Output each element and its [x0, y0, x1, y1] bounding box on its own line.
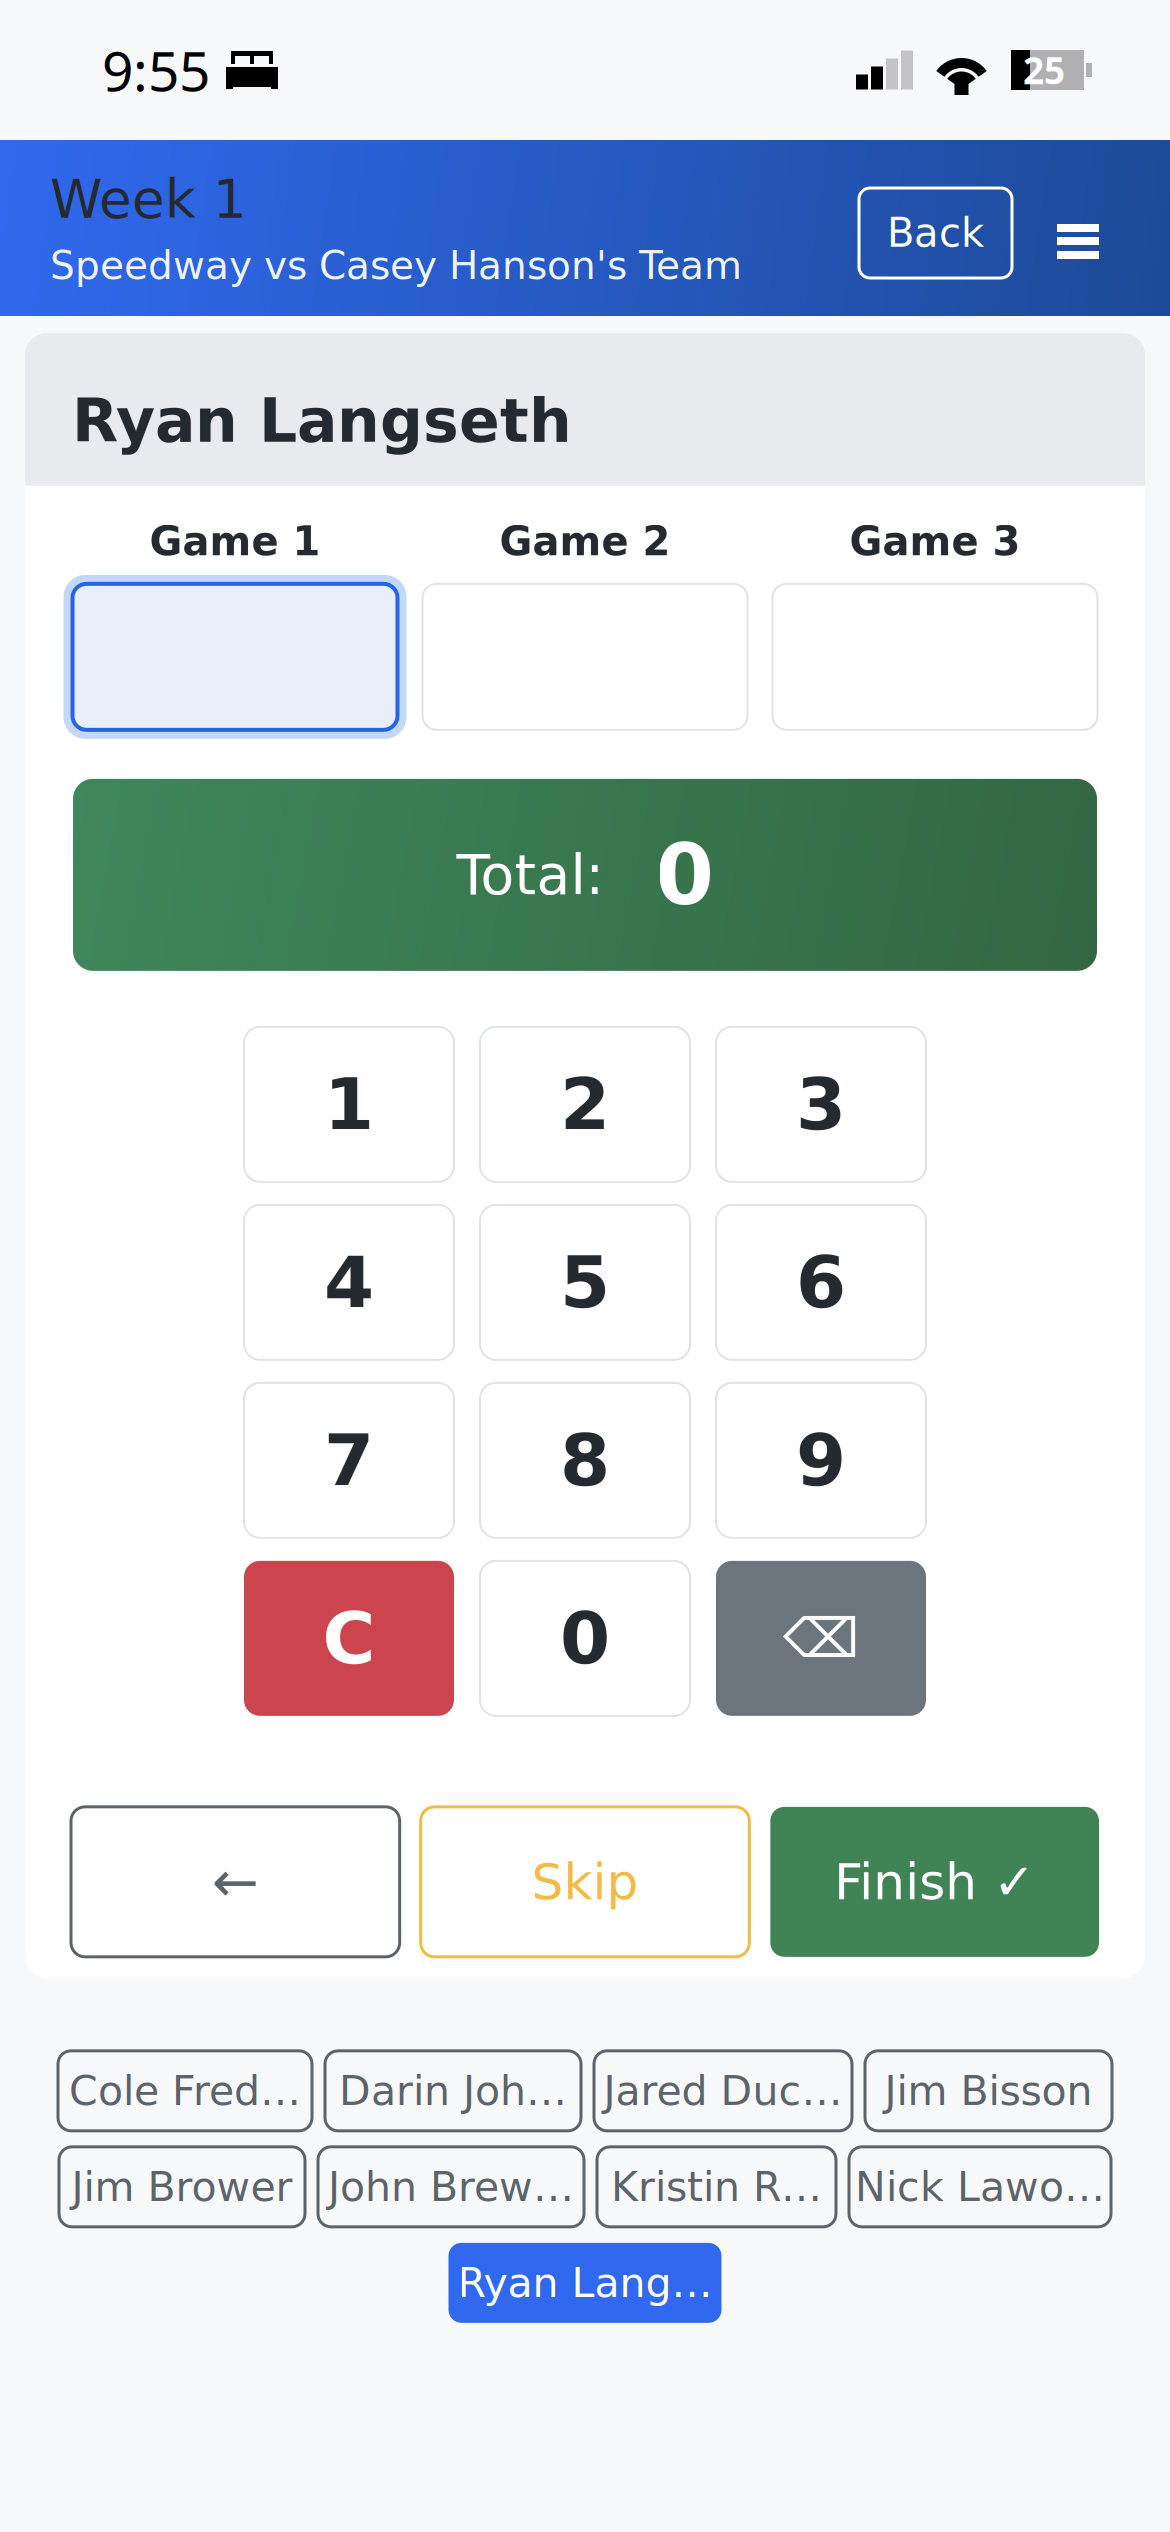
staticText: Jared Duc… — [603, 2067, 842, 2115]
staticText: Total: — [456, 843, 604, 907]
staticText: Back — [887, 210, 984, 256]
staticText: ⌫ — [783, 1607, 859, 1670]
staticText: Week 1 — [50, 169, 247, 230]
button[interactable] — [772, 575, 1097, 739]
staticText: Finish ✓ — [834, 1853, 1035, 1911]
staticText: Darin Joh… — [339, 2067, 567, 2115]
staticText: 9:55 — [102, 32, 210, 107]
button[interactable]: Menu — [1043, 178, 1113, 278]
button[interactable]: C — [244, 1561, 454, 1716]
staticText: Game 3 — [849, 518, 1020, 565]
staticText: John Brew… — [328, 2163, 574, 2211]
button[interactable] — [72, 575, 397, 739]
staticText: 0 — [655, 826, 713, 924]
button[interactable]: Delete — [716, 1561, 926, 1716]
staticText: Nick Lawo… — [855, 2163, 1105, 2211]
button[interactable]: Cole Fred… — [58, 2051, 312, 2131]
button[interactable]: Kristin R… — [597, 2147, 836, 2227]
button[interactable]: Darin Joh… — [325, 2051, 581, 2131]
staticText: Game 1 — [149, 518, 320, 565]
staticText: Jim Brower — [71, 2163, 292, 2211]
staticText: Skip — [531, 1853, 638, 1911]
staticText: C — [322, 1596, 375, 1680]
staticText: 25 — [1023, 45, 1065, 95]
staticText: 6 — [796, 1240, 846, 1324]
button[interactable]: Finish ✓ — [770, 1807, 1099, 1957]
button[interactable]: 5 — [480, 1205, 690, 1360]
staticText: 2 — [560, 1062, 610, 1146]
staticText: 5 — [560, 1240, 610, 1324]
button[interactable]: 6 — [716, 1205, 926, 1360]
staticText: 1 — [324, 1062, 374, 1146]
staticText: 3 — [796, 1062, 846, 1146]
button[interactable]: Previous player — [71, 1807, 400, 1957]
button[interactable]: Jim Brower — [59, 2147, 305, 2227]
button[interactable]: John Brew… — [318, 2147, 584, 2227]
staticText: ← — [212, 1849, 259, 1914]
button[interactable]: Jared Duc… — [594, 2051, 852, 2131]
button[interactable]: 0 — [480, 1561, 690, 1716]
button[interactable]: 3 — [716, 1027, 926, 1182]
staticText: 8 — [560, 1418, 610, 1502]
button[interactable]: Ryan Lang… — [448, 2243, 721, 2323]
staticText: Cole Fred… — [69, 2067, 301, 2115]
button[interactable]: Skip — [421, 1807, 749, 1957]
staticText: Kristin R… — [611, 2163, 822, 2211]
staticText: 4 — [324, 1240, 374, 1324]
staticText: Speedway vs Casey Hanson's Team — [50, 243, 742, 288]
staticText: 7 — [324, 1418, 374, 1502]
staticText: Game 2 — [499, 518, 670, 565]
staticText: 0 — [560, 1596, 610, 1680]
button[interactable]: 9 — [716, 1383, 926, 1538]
button[interactable]: 8 — [480, 1383, 690, 1538]
button[interactable]: 2 — [480, 1027, 690, 1182]
button[interactable]: Back — [859, 178, 1012, 278]
staticText: Ryan Lang… — [457, 2259, 712, 2307]
button[interactable] — [422, 575, 747, 739]
staticText: Ryan Langseth — [72, 386, 572, 456]
button[interactable]: 1 — [244, 1027, 454, 1182]
button[interactable]: Nick Lawo… — [849, 2147, 1111, 2227]
button[interactable]: 7 — [244, 1383, 454, 1538]
staticText: 9 — [796, 1418, 846, 1502]
button[interactable]: Jim Bisson — [865, 2051, 1112, 2131]
staticText: Jim Bisson — [884, 2067, 1092, 2115]
button[interactable]: 4 — [244, 1205, 454, 1360]
